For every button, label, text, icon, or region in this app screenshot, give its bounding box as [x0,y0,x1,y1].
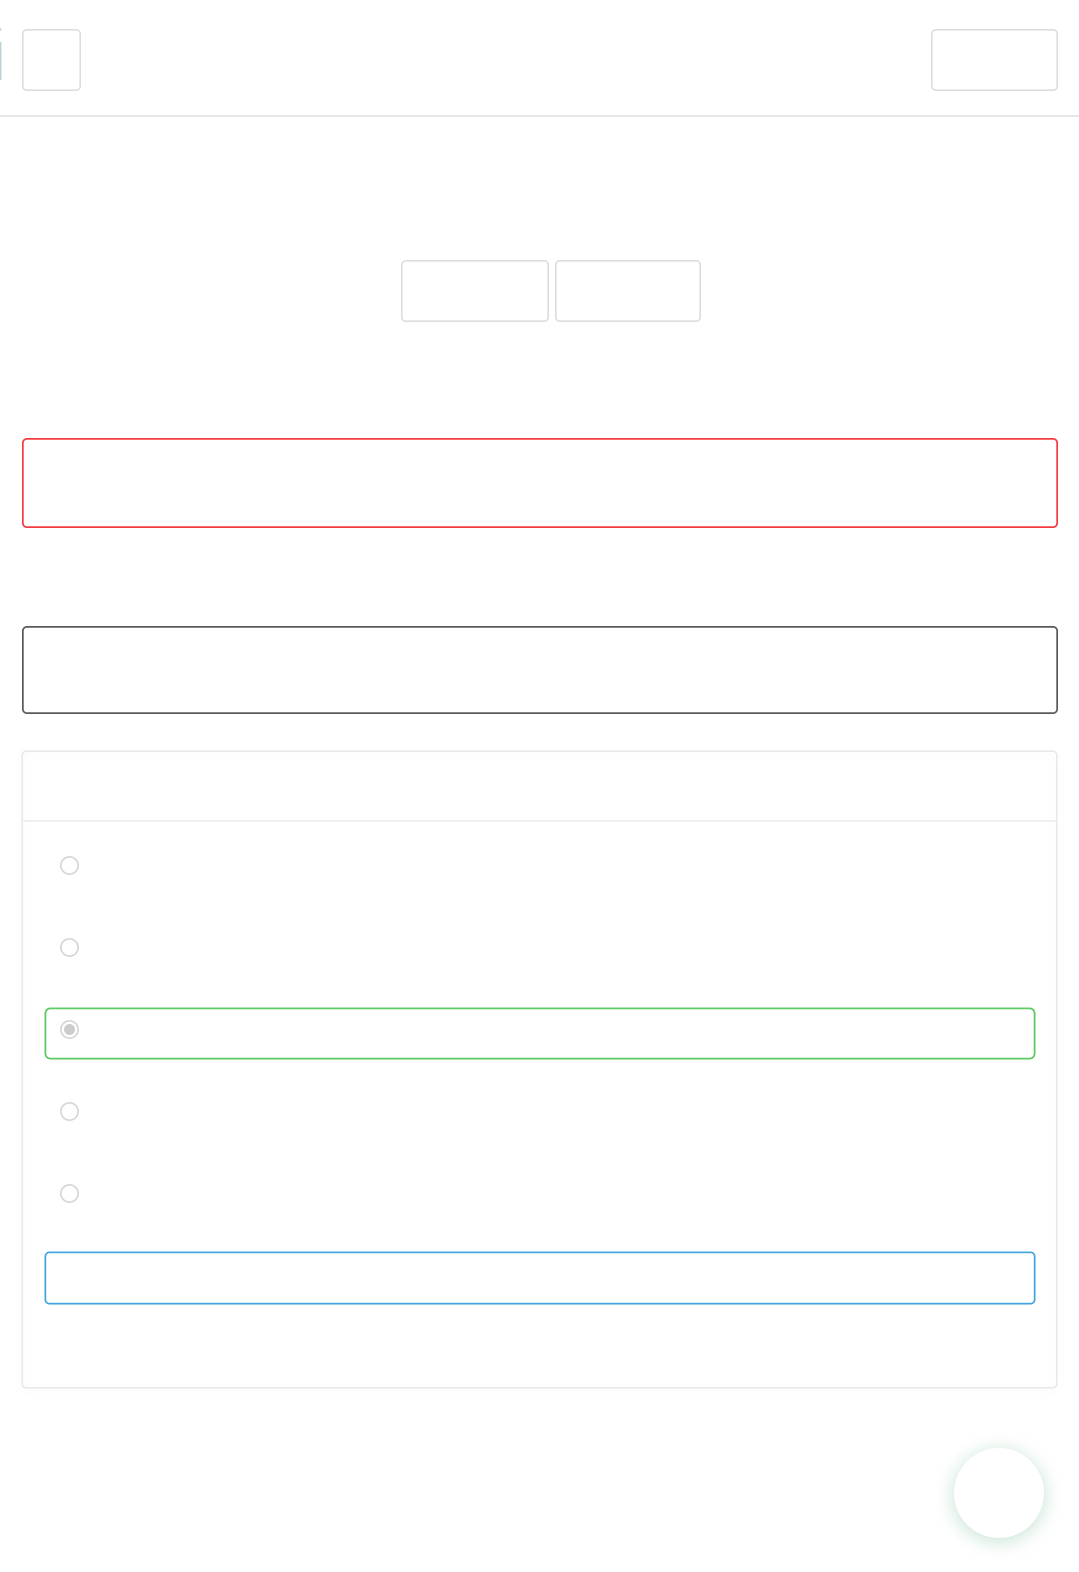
button[interactable]: Primary action [44,1251,1035,1304]
button[interactable]: Selected option [44,1020,1035,1082]
button[interactable]: Back [22,29,81,91]
button[interactable]: Segment one [401,260,549,322]
button[interactable]: Add [954,1448,1044,1538]
button[interactable]: More options [931,29,1058,91]
button[interactable]: Segment two [555,260,701,322]
